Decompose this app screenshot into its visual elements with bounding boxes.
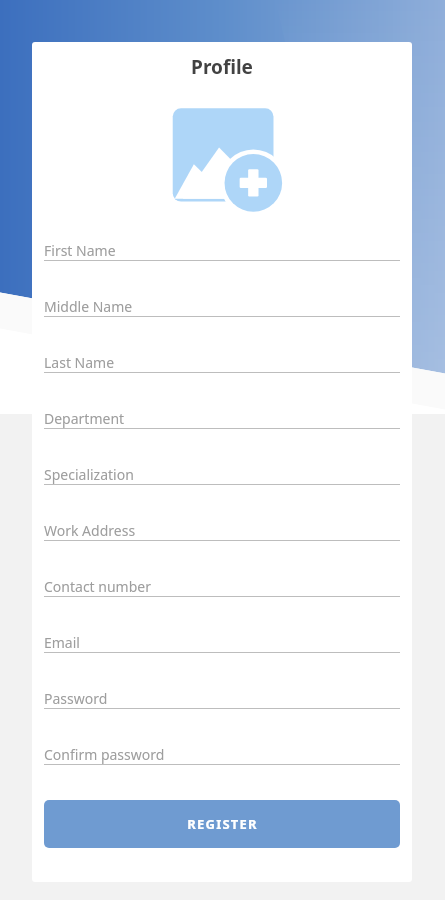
button[interactable]: REGISTER xyxy=(44,800,400,848)
button[interactable]: Password xyxy=(44,680,400,736)
button[interactable]: Department xyxy=(44,400,400,456)
staticText: Contact number xyxy=(44,577,151,596)
button[interactable]: Add profile photo xyxy=(158,92,286,220)
button[interactable]: Work Address xyxy=(44,512,400,568)
button[interactable]: Contact number xyxy=(44,568,400,624)
button[interactable]: Specialization xyxy=(44,456,400,512)
staticText: Work Address xyxy=(44,521,136,540)
button[interactable]: Middle Name xyxy=(44,288,400,344)
staticText: Department xyxy=(44,409,125,428)
staticText: Last Name xyxy=(44,353,115,372)
staticText: Middle Name xyxy=(44,297,133,316)
staticText: First Name xyxy=(44,241,116,260)
staticText: Specialization xyxy=(44,465,134,484)
button[interactable]: Email xyxy=(44,624,400,680)
staticText: Profile xyxy=(191,54,253,80)
staticText: Confirm password xyxy=(44,745,165,764)
button[interactable]: First Name xyxy=(44,232,400,288)
staticText: Email xyxy=(44,633,80,652)
button[interactable]: Confirm password xyxy=(44,736,400,792)
button[interactable]: Last Name xyxy=(44,344,400,400)
staticText: Password xyxy=(44,689,108,708)
staticText: REGISTER xyxy=(187,815,258,833)
